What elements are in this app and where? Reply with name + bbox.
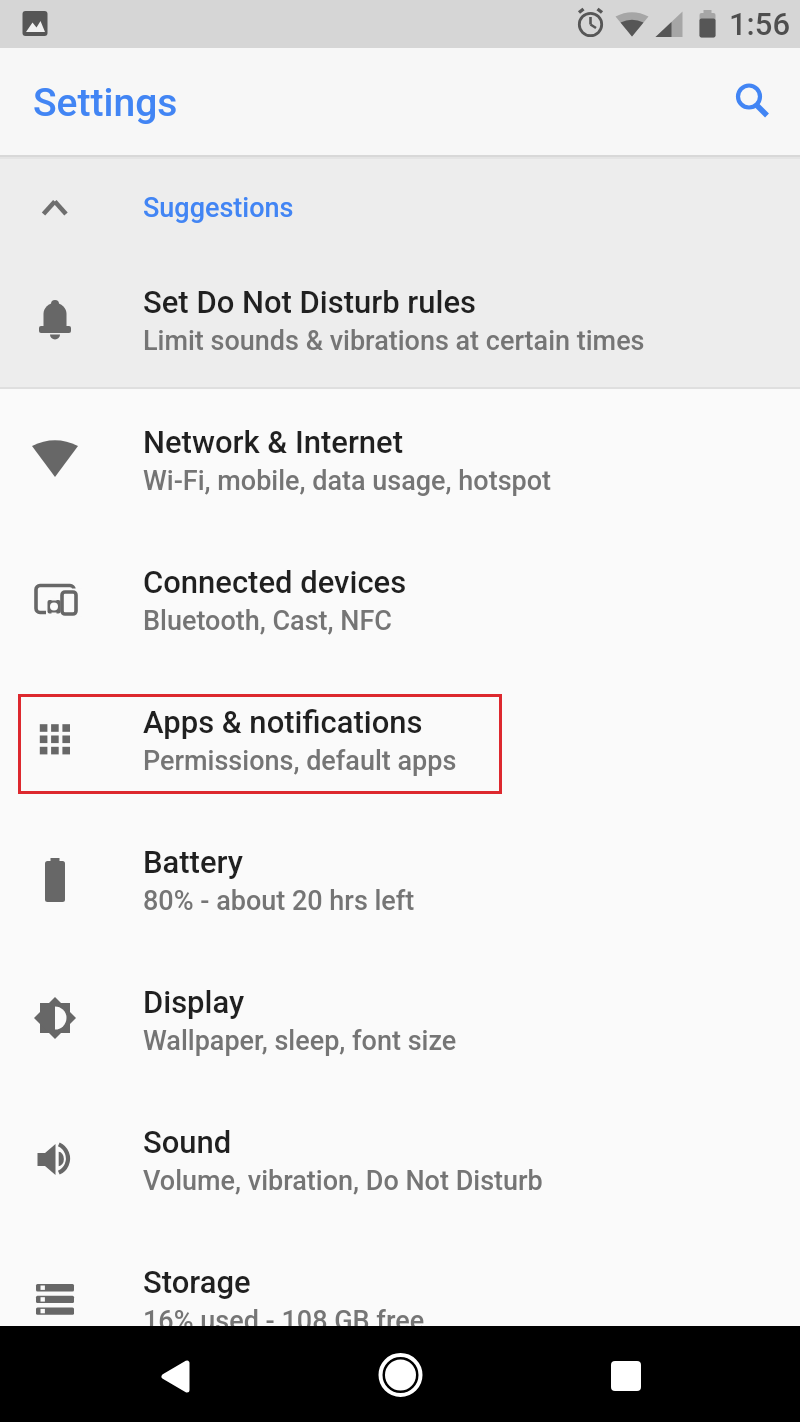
staticText: Settings	[33, 80, 178, 126]
staticText: Display	[143, 984, 245, 1020]
staticText: Storage	[143, 1264, 251, 1300]
button[interactable]	[145, 1345, 205, 1405]
staticText: Permissions, default apps	[143, 745, 457, 777]
button[interactable]	[0, 530, 800, 670]
button[interactable]	[0, 1230, 800, 1370]
staticText: Sound	[143, 1124, 232, 1160]
button[interactable]	[0, 390, 800, 530]
button[interactable]	[596, 1345, 656, 1405]
staticText: Set Do Not Disturb rules	[143, 284, 476, 320]
staticText: Bluetooth, Cast, NFC	[143, 605, 392, 637]
staticText: Suggestions	[143, 192, 294, 224]
staticText: 16% used - 108 GB free	[143, 1305, 425, 1337]
staticText: 80% - about 20 hrs left	[143, 885, 415, 917]
staticText: Connected devices	[143, 564, 407, 600]
button[interactable]	[370, 1345, 430, 1405]
staticText: Limit sounds & vibrations at certain tim…	[143, 325, 645, 357]
staticText: Wi-Fi, mobile, data usage, hotspot	[143, 465, 552, 497]
staticText: Battery	[143, 844, 243, 880]
button[interactable]	[724, 72, 772, 120]
staticText: Network & Internet	[143, 424, 404, 460]
button[interactable]	[0, 810, 800, 950]
staticText: Wallpaper, sleep, font size	[143, 1025, 457, 1057]
button[interactable]	[0, 670, 800, 810]
staticText: Apps & notifications	[143, 704, 423, 740]
button[interactable]	[0, 950, 800, 1090]
button[interactable]	[0, 157, 800, 250]
staticText: Volume, vibration, Do Not Disturb	[143, 1165, 543, 1197]
button[interactable]	[0, 1090, 800, 1230]
button[interactable]	[0, 250, 800, 390]
staticText: 1:56	[729, 6, 791, 42]
